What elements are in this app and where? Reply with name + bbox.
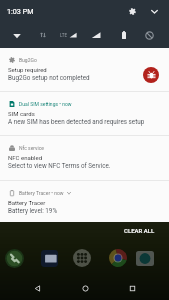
- staticText: Select to view NFC Terms of Service.: [8, 162, 111, 169]
- button[interactable]: Camera: [134, 247, 156, 269]
- staticText: Dual SIM settings • now: [19, 101, 72, 107]
- button[interactable]: Back: [26, 277, 48, 299]
- staticText: Battery Tracer: [8, 199, 46, 206]
- button[interactable]: Expand quick settings: [147, 4, 161, 18]
- staticText: Setup required: [8, 66, 47, 73]
- button[interactable]: Nfc service: [0, 136, 169, 180]
- button[interactable]: All apps: [71, 247, 93, 269]
- button[interactable]: Battery Tracer • now: [0, 181, 169, 222]
- staticText: NFC enabled: [8, 154, 43, 161]
- staticText: LTE: [60, 33, 68, 38]
- staticText: 1:03 PM: [7, 7, 34, 15]
- staticText: CLEAR ALL: [124, 227, 155, 234]
- button[interactable]: Phone: [3, 247, 25, 269]
- button[interactable]: CLEAR ALL: [110, 222, 169, 240]
- staticText: A new SIM has been detected and requires…: [8, 118, 145, 125]
- staticText: Bug2Go: [19, 57, 37, 63]
- staticText: Nfc service: [19, 145, 44, 151]
- button[interactable]: Recent apps: [121, 277, 143, 299]
- staticText: Battery Tracer • now: [19, 190, 64, 196]
- button[interactable]: Chrome: [107, 247, 129, 269]
- staticText: Battery level: 19%: [8, 207, 58, 214]
- button[interactable]: Settings: [125, 4, 139, 18]
- button[interactable]: Dual SIM settings • now: [0, 92, 169, 135]
- button[interactable]: Home: [74, 277, 96, 299]
- staticText: Bug2Go setup not completed: [8, 74, 90, 81]
- button[interactable]: Messages: [38, 247, 60, 269]
- staticText: SIM cards: [8, 110, 35, 117]
- button[interactable]: Bug2Go: [0, 48, 169, 91]
